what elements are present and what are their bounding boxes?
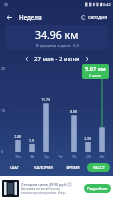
staticText: сегодня xyxy=(88,14,108,21)
button[interactable]: Next week xyxy=(82,54,92,64)
staticText: 10 xyxy=(1,108,6,113)
staticText: 2.88 xyxy=(14,134,21,139)
staticText: ШАГ xyxy=(10,165,19,170)
staticText: 34.96 км xyxy=(35,28,79,42)
staticText: ВРЕМЯ xyxy=(66,165,80,170)
staticText: 20 xyxy=(1,66,6,71)
staticText: Сб xyxy=(86,154,91,159)
staticText: Доставка по всей России, xyxy=(21,187,61,191)
button[interactable]: 34.96 км xyxy=(5,25,108,50)
button[interactable]: 5.97 км xyxy=(82,64,109,79)
button[interactable]: Previous week xyxy=(22,54,32,64)
staticText: Вт xyxy=(30,154,35,159)
staticText: Ср xyxy=(44,154,49,159)
button[interactable]: Сегодня цена 4990 руб. xyxy=(0,176,113,200)
staticText: 0 xyxy=(1,149,4,154)
staticText: 11.73 xyxy=(41,97,50,102)
staticText: Подробнее xyxy=(87,186,108,191)
button[interactable]: Подробнее xyxy=(84,184,111,193)
staticText: 23:42 xyxy=(100,2,111,8)
button[interactable]: Back xyxy=(3,11,16,24)
staticText: В среднем в день: 5.0 xyxy=(36,43,79,48)
staticText: Неделя xyxy=(19,13,42,21)
button[interactable]: ШАГ xyxy=(3,163,26,172)
button[interactable]: КАЛОРИЯ xyxy=(28,163,58,172)
staticText: 2.39 xyxy=(84,136,91,141)
staticText: оплата при получении. Когр… xyxy=(21,191,68,195)
staticText: Пт xyxy=(72,154,77,159)
button[interactable]: РАССТ xyxy=(87,163,110,172)
staticText: 1.9 xyxy=(29,138,34,143)
staticText: 2 июня xyxy=(89,73,102,78)
staticText: Сегодня цена 4990 руб. xyxy=(21,182,67,187)
button[interactable]: сегодня xyxy=(79,13,110,22)
staticText: Вс xyxy=(100,154,105,159)
staticText: РАССТ xyxy=(93,165,105,170)
staticText: 5.97 км xyxy=(85,65,106,73)
staticText: КАЛОРИЯ xyxy=(34,165,53,170)
staticText: Пн xyxy=(15,154,21,159)
staticText: 8.88 xyxy=(70,109,77,114)
staticText: Чт xyxy=(58,154,63,159)
button[interactable]: ВРЕМЯ xyxy=(60,163,85,172)
staticText: 27 мая - 2 июня xyxy=(34,55,80,63)
